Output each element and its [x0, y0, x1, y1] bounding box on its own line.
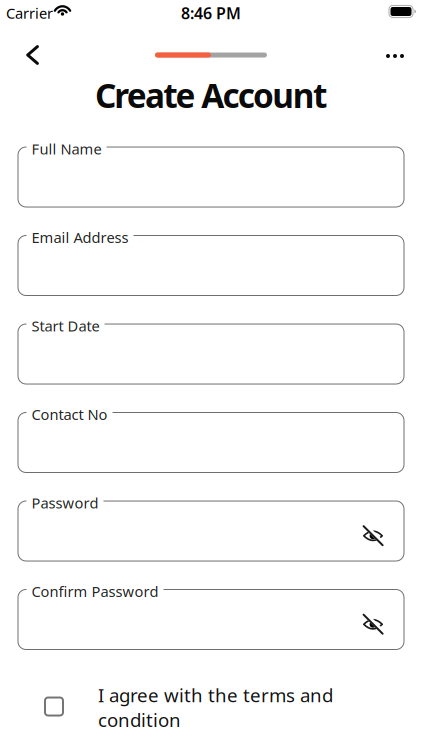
staticText: Contact No [31, 404, 107, 424]
staticText: Full Name [31, 139, 101, 158]
staticText: Create Account [95, 73, 327, 117]
staticText: Password [31, 493, 98, 512]
staticText: Confirm Password [31, 581, 158, 601]
button[interactable]: More options [374, 39, 422, 71]
button[interactable]: Show password [361, 612, 385, 636]
staticText: 8:46 PM [181, 2, 241, 24]
button[interactable]: Show password [361, 524, 385, 548]
staticText: Carrier [6, 3, 53, 23]
staticText: Email Address [31, 227, 128, 247]
staticText: Start Date [31, 316, 99, 335]
button[interactable]: Back [0, 35, 51, 75]
staticText: I agree with the terms and condition [98, 682, 333, 732]
button[interactable]: I agree with the terms and condition [0, 682, 422, 732]
